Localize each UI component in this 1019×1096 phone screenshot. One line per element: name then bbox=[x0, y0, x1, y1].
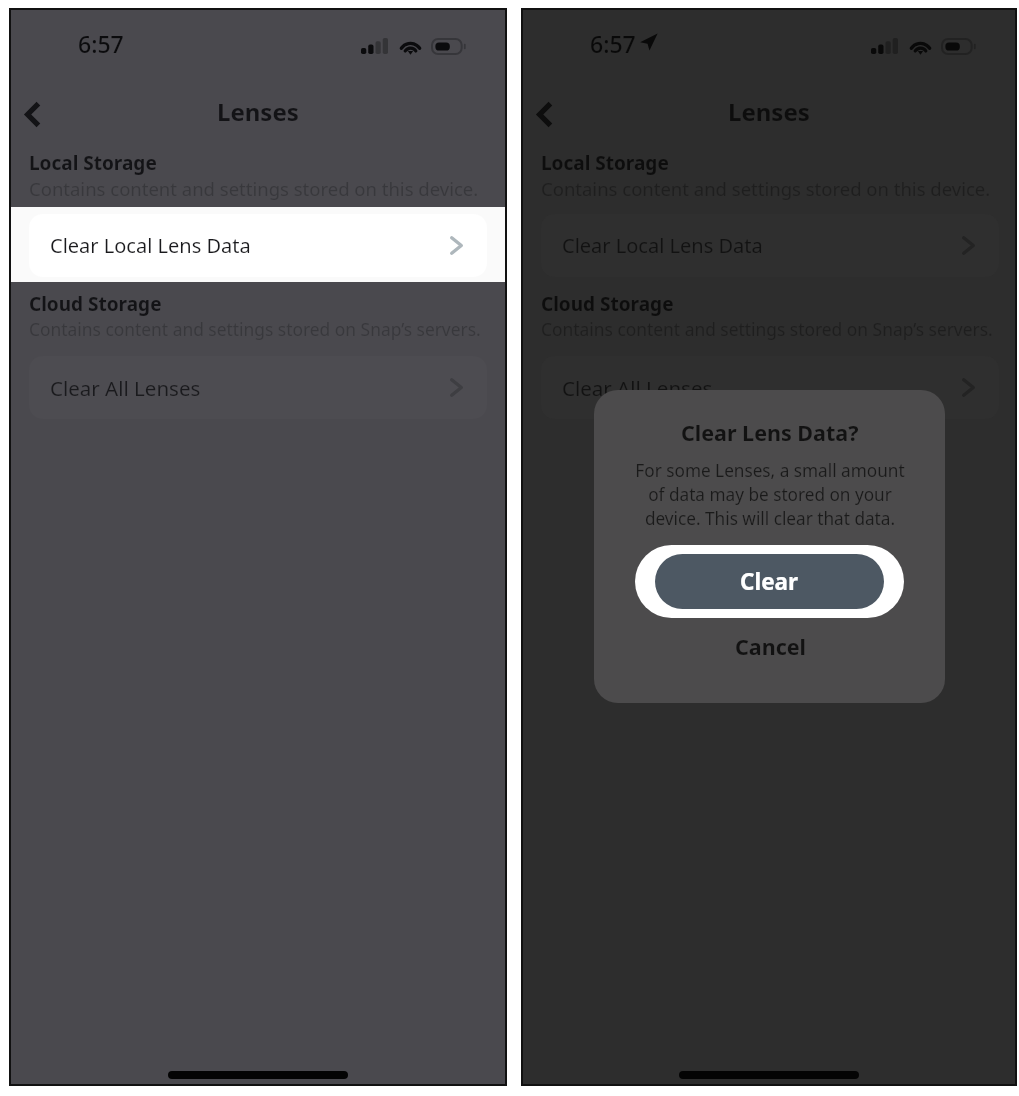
staticText: Contains content and settings stored on … bbox=[541, 317, 993, 341]
staticText: Lenses bbox=[217, 95, 299, 128]
button[interactable]: Back bbox=[523, 88, 571, 140]
button[interactable]: Cancel bbox=[690, 625, 850, 667]
staticText: Clear bbox=[740, 566, 799, 597]
staticText: Clear All Lenses bbox=[562, 374, 713, 402]
staticText: Contains content and settings stored on … bbox=[29, 176, 479, 201]
button[interactable]: Clear All Lenses bbox=[541, 356, 999, 419]
button[interactable]: Back bbox=[11, 88, 59, 140]
staticText: Cancel bbox=[735, 632, 806, 661]
staticText: Clear Local Lens Data bbox=[50, 232, 251, 259]
staticText: Cloud Storage bbox=[541, 291, 674, 317]
staticText: Contains content and settings stored on … bbox=[29, 317, 481, 341]
staticText: Cloud Storage bbox=[29, 291, 162, 317]
button[interactable]: Clear Local Lens Data bbox=[29, 214, 487, 277]
staticText: Clear Lens Data? bbox=[681, 418, 859, 447]
staticText: Clear Local Lens Data bbox=[562, 232, 763, 259]
staticText: Contains content and settings stored on … bbox=[541, 176, 991, 201]
button[interactable]: Clear bbox=[635, 545, 904, 618]
staticText: Local Storage bbox=[29, 150, 157, 176]
button[interactable]: Clear Local Lens Data bbox=[541, 214, 999, 277]
staticText: Clear All Lenses bbox=[50, 374, 201, 402]
button[interactable]: Clear All Lenses bbox=[29, 356, 487, 419]
staticText: 6:57 bbox=[78, 28, 124, 59]
staticText: For some Lenses, a small amount of data … bbox=[635, 459, 905, 530]
staticText: Local Storage bbox=[541, 150, 669, 176]
staticText: Lenses bbox=[728, 95, 810, 128]
staticText: 6:57 bbox=[590, 28, 636, 59]
